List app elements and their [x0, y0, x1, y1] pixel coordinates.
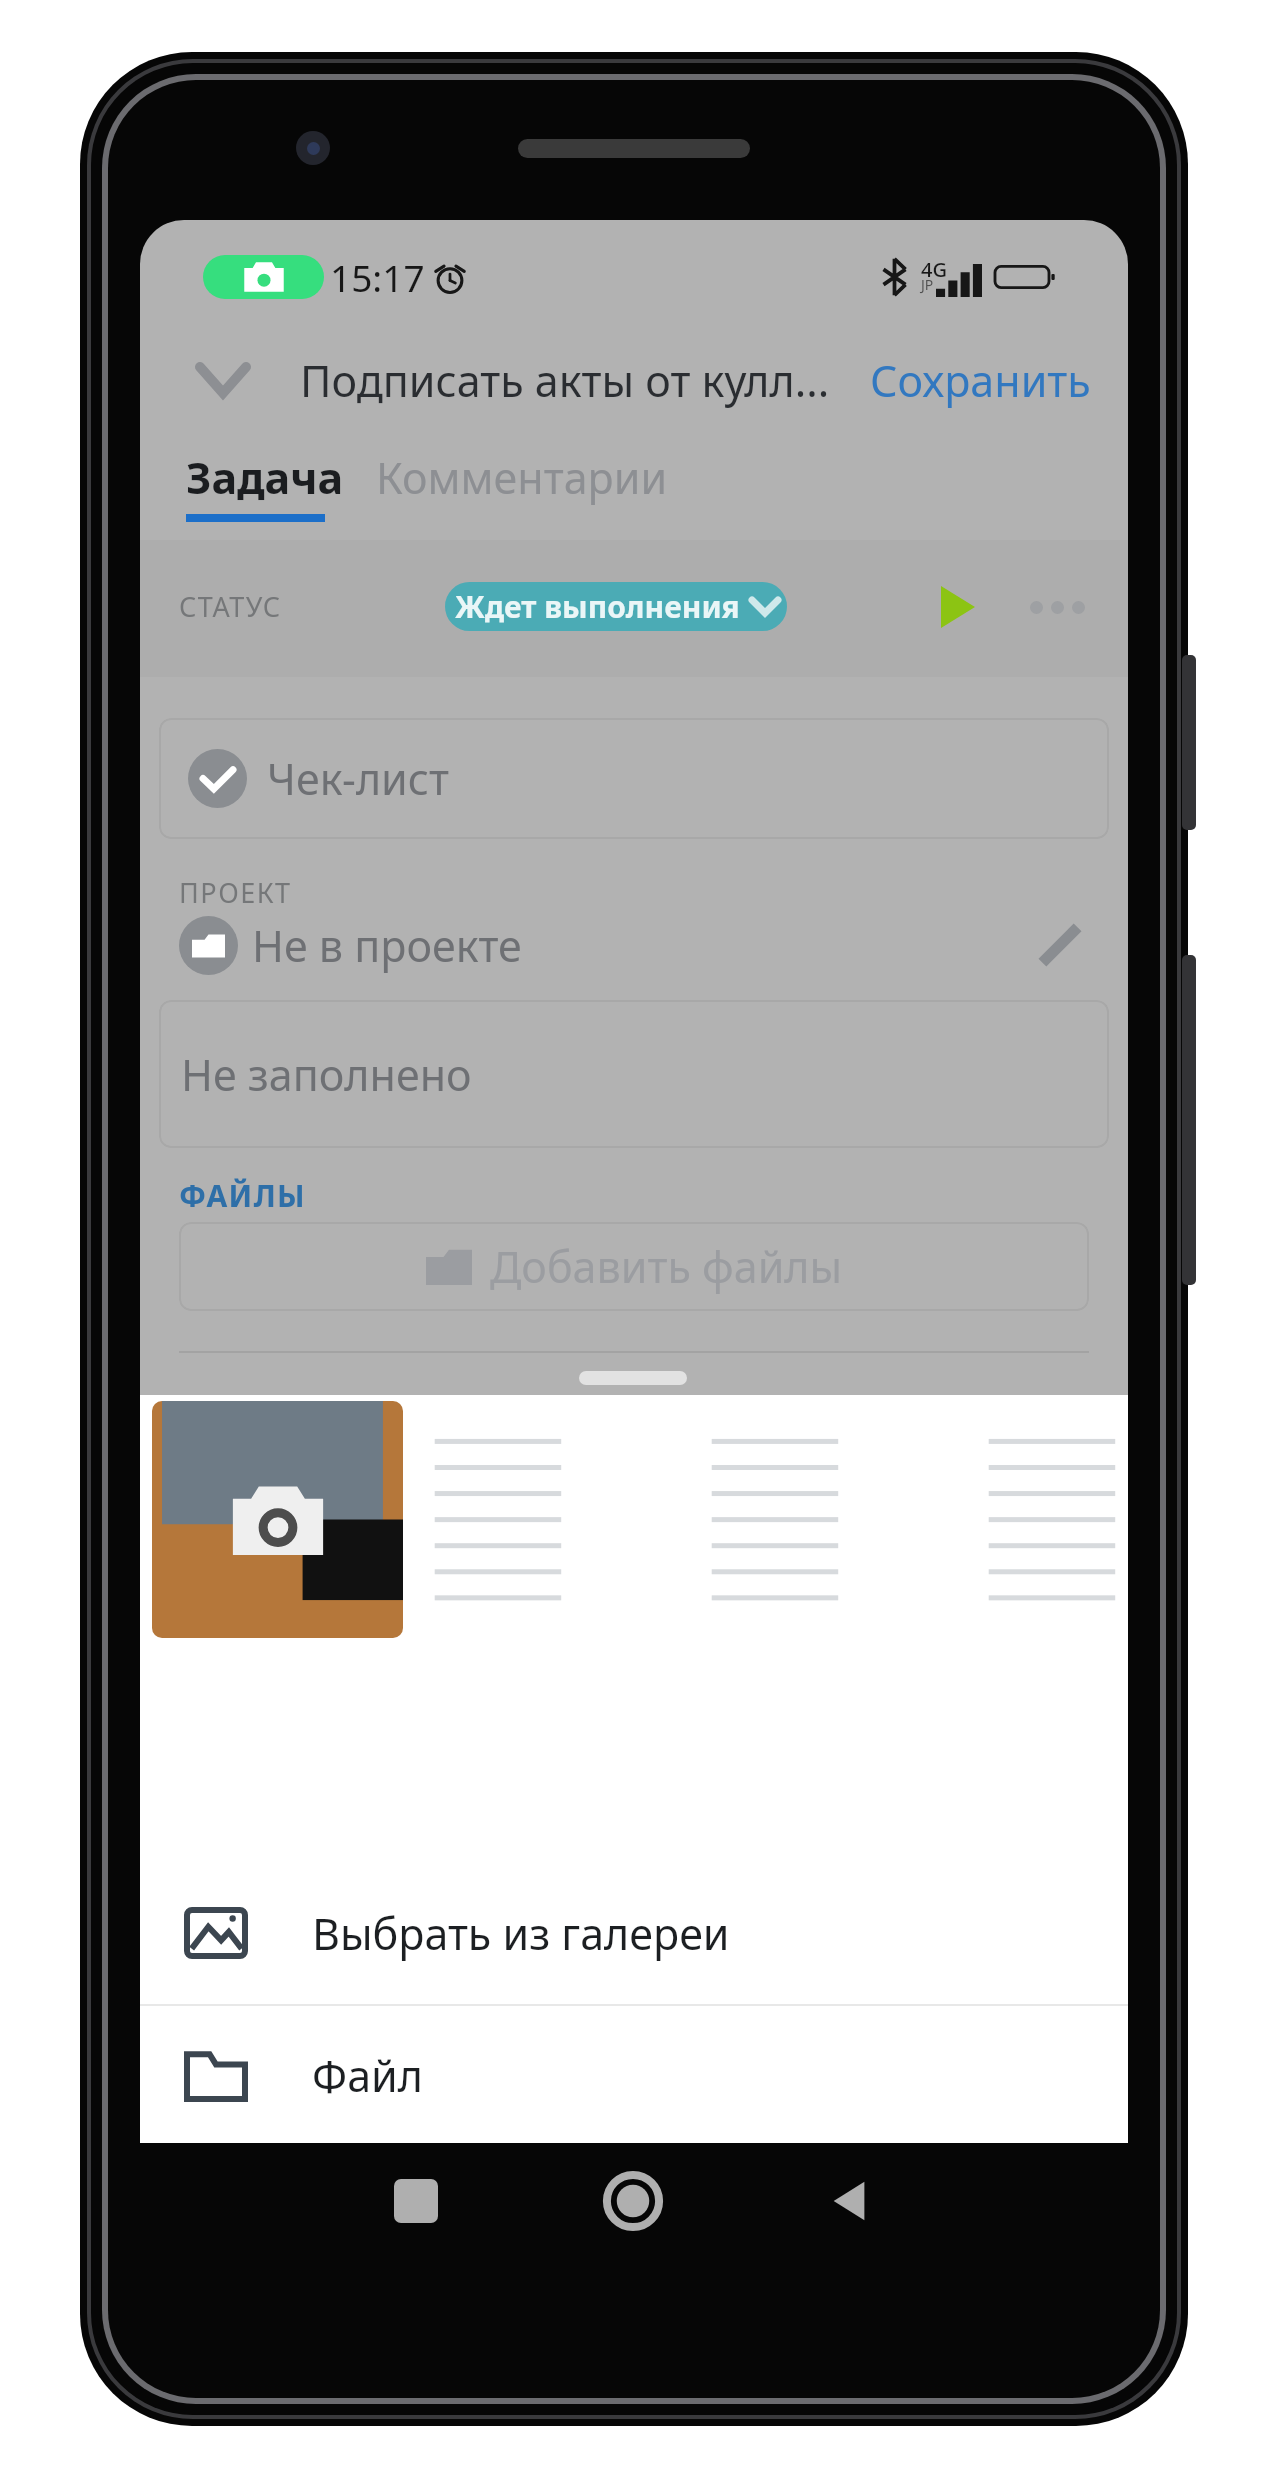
button[interactable]: Выбрать из галереи [140, 1862, 1128, 2004]
button[interactable]: Задача [186, 448, 344, 507]
staticText: СОИСПОЛНИТЕЛИ [179, 1387, 477, 1429]
button[interactable]: Back [810, 2161, 890, 2241]
staticText: Добавить файлы [490, 1237, 843, 1296]
staticText: Не заполнено [181, 1045, 472, 1104]
staticText: Ждет выполнения [455, 586, 740, 627]
staticText: Подписать акты от кулл... [300, 351, 830, 410]
button[interactable] [417, 1401, 670, 1638]
button[interactable]: Сохранить [858, 330, 1103, 430]
button[interactable]: Не заполнено [159, 1000, 1109, 1148]
button[interactable]: Файл [140, 2004, 1128, 2143]
staticText: Задача [186, 448, 344, 507]
button[interactable] [694, 1401, 947, 1638]
button[interactable]: Collapse [168, 330, 278, 430]
button[interactable]: Не в проекте [179, 912, 1089, 978]
staticText: Чек-лист [267, 749, 450, 808]
staticText: 15:17 [330, 252, 425, 302]
button[interactable]: Комментарии [376, 448, 668, 507]
staticText: СТАТУС [179, 588, 282, 625]
staticText: Сохранить [870, 351, 1091, 410]
button[interactable]: Чек-лист [159, 718, 1109, 839]
button[interactable]: Edit project [1031, 916, 1089, 974]
staticText: ПРОЕКТ [179, 874, 292, 911]
staticText: Выбрать из галереи [312, 1904, 730, 1963]
button[interactable] [971, 1401, 1128, 1638]
button[interactable]: Recents [376, 2161, 456, 2241]
staticText: JP [921, 275, 934, 294]
button[interactable]: Start timer [908, 557, 1008, 657]
staticText: Не в проекте [252, 916, 522, 975]
button[interactable]: Take photo [152, 1401, 403, 1638]
staticText: Файл [312, 2046, 423, 2105]
staticText: ФАЙЛЫ [179, 1175, 307, 1216]
staticText: 4G [921, 256, 947, 283]
staticText: Комментарии [376, 448, 668, 507]
button[interactable]: Добавить файлы [179, 1222, 1089, 1311]
button[interactable]: Ждет выполнения [445, 582, 787, 631]
button[interactable]: Home [593, 2161, 673, 2241]
